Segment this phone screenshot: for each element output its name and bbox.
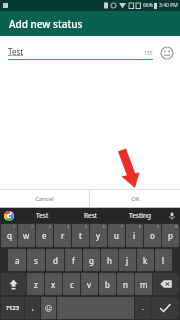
button[interactable]: , [25, 297, 40, 319]
button[interactable]: f [65, 249, 82, 271]
button[interactable]: h [101, 249, 118, 271]
button[interactable]: Backspace [153, 273, 179, 295]
button[interactable]: r [54, 224, 71, 247]
button[interactable]: Cancel [0, 190, 89, 207]
button[interactable]: k [137, 249, 154, 271]
staticText: o [150, 230, 155, 241]
button[interactable]: Enter [151, 297, 179, 319]
staticText: z [34, 279, 38, 290]
button[interactable]: q [1, 224, 17, 247]
staticText: g [89, 255, 94, 266]
staticText: 0 [175, 224, 178, 229]
button[interactable]: v [81, 273, 98, 295]
staticText: 2 [31, 224, 34, 229]
staticText: e [42, 230, 47, 241]
staticText: 5 [85, 224, 88, 229]
button[interactable]: s [27, 249, 45, 271]
button[interactable]: . [135, 297, 150, 319]
button[interactable]: t [72, 224, 89, 247]
button[interactable]: Testing [115, 208, 164, 223]
staticText: i [133, 230, 136, 241]
staticText: Rest [84, 211, 98, 220]
staticText: 9 [157, 224, 160, 229]
staticText: t [79, 230, 82, 241]
button[interactable]: Voice input [164, 208, 180, 223]
staticText: u [114, 230, 119, 241]
staticText: 4 [67, 224, 70, 229]
staticText: , [32, 303, 34, 313]
button[interactable]: OK [90, 190, 180, 207]
staticText: Testing [129, 211, 151, 220]
staticText: d [53, 255, 58, 266]
staticText: s [34, 255, 38, 266]
staticText: p [168, 230, 173, 241]
button[interactable]: y [90, 224, 107, 247]
button[interactable]: j [119, 249, 136, 271]
staticText: 66% [143, 2, 153, 9]
staticText: OK [131, 195, 140, 203]
button[interactable]: d [46, 249, 64, 271]
staticText: m [140, 279, 148, 290]
button[interactable]: b [99, 273, 116, 295]
button[interactable]: Google [0, 208, 18, 223]
button[interactable]: p [162, 224, 179, 247]
button[interactable]: o [144, 224, 161, 247]
button[interactable]: Rest [66, 208, 115, 223]
staticText: Test [8, 46, 24, 57]
staticText: Add new status [9, 17, 83, 31]
button[interactable]: Emoji keyboard [41, 297, 56, 319]
staticText: Test [36, 211, 49, 220]
button[interactable]: e [36, 224, 53, 247]
staticText: 3:40 PM [159, 2, 178, 9]
staticText: Cancel [35, 195, 54, 203]
button[interactable]: m [135, 273, 152, 295]
staticText: ?123 [6, 304, 20, 312]
staticText: f [72, 255, 75, 266]
staticText: 7 [121, 224, 124, 229]
staticText: 6 [103, 224, 106, 229]
staticText: l [162, 255, 165, 266]
staticText: q [7, 230, 12, 241]
staticText: b [105, 279, 110, 290]
staticText: 135 [144, 50, 153, 57]
button[interactable]: w [18, 224, 35, 247]
staticText: r [61, 230, 65, 241]
staticText: y [96, 230, 101, 241]
staticText: 1 [13, 224, 16, 229]
staticText: v [87, 279, 92, 290]
button[interactable]: ?123 [1, 297, 24, 319]
button[interactable]: Emoji [160, 46, 174, 60]
staticText: a [15, 255, 20, 266]
button[interactable]: n [117, 273, 134, 295]
staticText: x [51, 279, 56, 290]
button[interactable]: Test [18, 208, 66, 223]
staticText: 3 [49, 224, 52, 229]
staticText: 8 [139, 224, 142, 229]
button[interactable]: a [8, 249, 26, 271]
staticText: . [142, 303, 144, 313]
button[interactable]: z [27, 273, 44, 295]
staticText: c [70, 279, 74, 290]
staticText: k [143, 255, 148, 266]
staticText: w [23, 230, 30, 241]
button[interactable]: l [155, 249, 172, 271]
button[interactable]: i [126, 224, 143, 247]
staticText: j [126, 255, 129, 266]
button[interactable]: c [63, 273, 80, 295]
button[interactable]: u [108, 224, 125, 247]
button[interactable]: x [45, 273, 62, 295]
button[interactable]: g [83, 249, 100, 271]
staticText: h [107, 255, 112, 266]
button[interactable]: Shift [1, 273, 26, 295]
staticText: n [123, 279, 128, 290]
